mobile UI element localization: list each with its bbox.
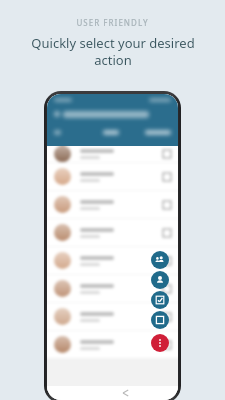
button[interactable]: Select all (151, 311, 169, 329)
button[interactable] (47, 303, 178, 330)
button[interactable]: Add person (151, 271, 169, 289)
button[interactable] (47, 219, 178, 246)
button[interactable] (47, 191, 178, 218)
button[interactable]: Add people (151, 251, 169, 269)
button[interactable] (47, 146, 178, 162)
staticText: Quickly select your desired action (23, 34, 203, 69)
button[interactable] (47, 163, 178, 190)
button[interactable]: More options (151, 334, 169, 352)
button[interactable] (47, 247, 178, 274)
staticText: USER FRIENDLY (76, 17, 149, 28)
button[interactable] (47, 275, 178, 302)
button[interactable]: Edit (151, 291, 169, 309)
button[interactable] (47, 331, 178, 358)
